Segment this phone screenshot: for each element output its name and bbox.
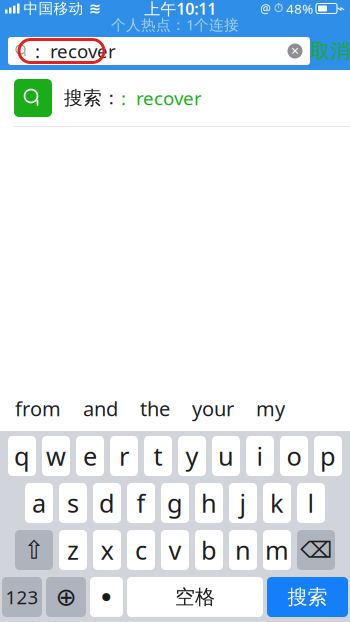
staticText: e [83, 439, 97, 473]
button[interactable]: v [161, 530, 189, 570]
button[interactable]: 取消 [310, 33, 350, 69]
staticText: your [192, 395, 234, 422]
staticText: v [168, 533, 181, 567]
button[interactable]: x [93, 530, 121, 570]
staticText: ⌫ [300, 537, 332, 563]
staticText: ⏺ [102, 588, 111, 605]
staticText: 搜索 [287, 585, 327, 609]
staticText: o [286, 439, 301, 473]
staticText: ✕ [290, 45, 299, 57]
staticText: i [256, 439, 263, 473]
staticText: q [14, 439, 30, 473]
button[interactable]: i [246, 436, 274, 476]
staticText: d [99, 486, 115, 520]
button[interactable]: your [181, 386, 245, 431]
staticText: 上午10:11 [144, 0, 216, 19]
staticText: w [46, 439, 66, 473]
button[interactable]: 空格 [127, 577, 263, 617]
staticText: a [32, 486, 46, 520]
staticText: h [201, 486, 217, 520]
staticText: 空格 [175, 585, 215, 609]
button[interactable]: Next keyboard [46, 577, 86, 617]
button[interactable]: g [161, 483, 189, 523]
button[interactable]: b [195, 530, 223, 570]
button[interactable]: l [297, 483, 325, 523]
staticText: 取消 [310, 39, 350, 63]
staticText: f [136, 486, 145, 520]
button[interactable]: Delete [297, 530, 335, 570]
button[interactable]: the [129, 386, 181, 431]
staticText: s [67, 486, 79, 520]
button[interactable]: q [8, 436, 36, 476]
staticText: ≋ [88, 0, 100, 17]
button[interactable]: from [4, 386, 72, 431]
staticText: 搜索： [64, 86, 121, 109]
button[interactable]: c [127, 530, 155, 570]
button[interactable]: e [76, 436, 104, 476]
staticText: : recover [35, 39, 116, 63]
staticText: y [185, 439, 198, 473]
staticText: : recover [121, 86, 202, 110]
staticText: 个人热点：1个连接 [111, 15, 239, 34]
button[interactable]: s [59, 483, 87, 523]
button[interactable]: p [314, 436, 342, 476]
button[interactable]: 搜索： [0, 70, 350, 126]
staticText: 48% [286, 0, 313, 17]
button[interactable]: o [280, 436, 308, 476]
button[interactable]: d [93, 483, 121, 523]
button[interactable]: k [263, 483, 291, 523]
staticText: j [239, 486, 246, 520]
button[interactable]: u [212, 436, 240, 476]
staticText: m [265, 533, 289, 567]
button[interactable]: j [229, 483, 257, 523]
staticText: 中国移动 [23, 0, 83, 17]
button[interactable]: m [263, 530, 291, 570]
staticText: u [218, 439, 234, 473]
button[interactable]: 123 [2, 577, 42, 617]
staticText: ⌁ [337, 1, 345, 16]
staticText: n [235, 533, 251, 567]
button[interactable]: y [178, 436, 206, 476]
button[interactable]: w [42, 436, 70, 476]
staticText: from [15, 395, 61, 422]
staticText: c [135, 533, 147, 567]
button[interactable]: f [127, 483, 155, 523]
button[interactable]: 搜索 [267, 577, 348, 617]
staticText: and [83, 395, 118, 422]
button[interactable]: Shift [15, 530, 53, 570]
staticText: ⇧ [23, 536, 44, 564]
staticText: x [100, 533, 113, 567]
button[interactable]: Clear search text [280, 37, 310, 65]
button[interactable]: Dictation [90, 577, 123, 617]
button[interactable]: n [229, 530, 257, 570]
staticText: 123 [5, 585, 38, 609]
button[interactable]: my [245, 386, 296, 431]
staticText: ⊕ [55, 583, 76, 611]
button[interactable]: and [72, 386, 129, 431]
button[interactable]: a [25, 483, 53, 523]
button[interactable]: h [195, 483, 223, 523]
staticText: k [270, 486, 284, 520]
staticText: t [153, 439, 162, 473]
staticText: @ [260, 0, 271, 16]
staticText: r [119, 439, 129, 473]
staticText: b [201, 533, 217, 567]
staticText: z [67, 533, 79, 567]
staticText: my [256, 395, 285, 422]
staticText: the [140, 395, 170, 422]
staticText: ⏱ [274, 3, 283, 14]
staticText: p [320, 439, 336, 473]
button[interactable]: z [59, 530, 87, 570]
button[interactable]: t [144, 436, 172, 476]
staticText: l [307, 486, 314, 520]
staticText: g [167, 486, 183, 520]
button[interactable]: r [110, 436, 138, 476]
